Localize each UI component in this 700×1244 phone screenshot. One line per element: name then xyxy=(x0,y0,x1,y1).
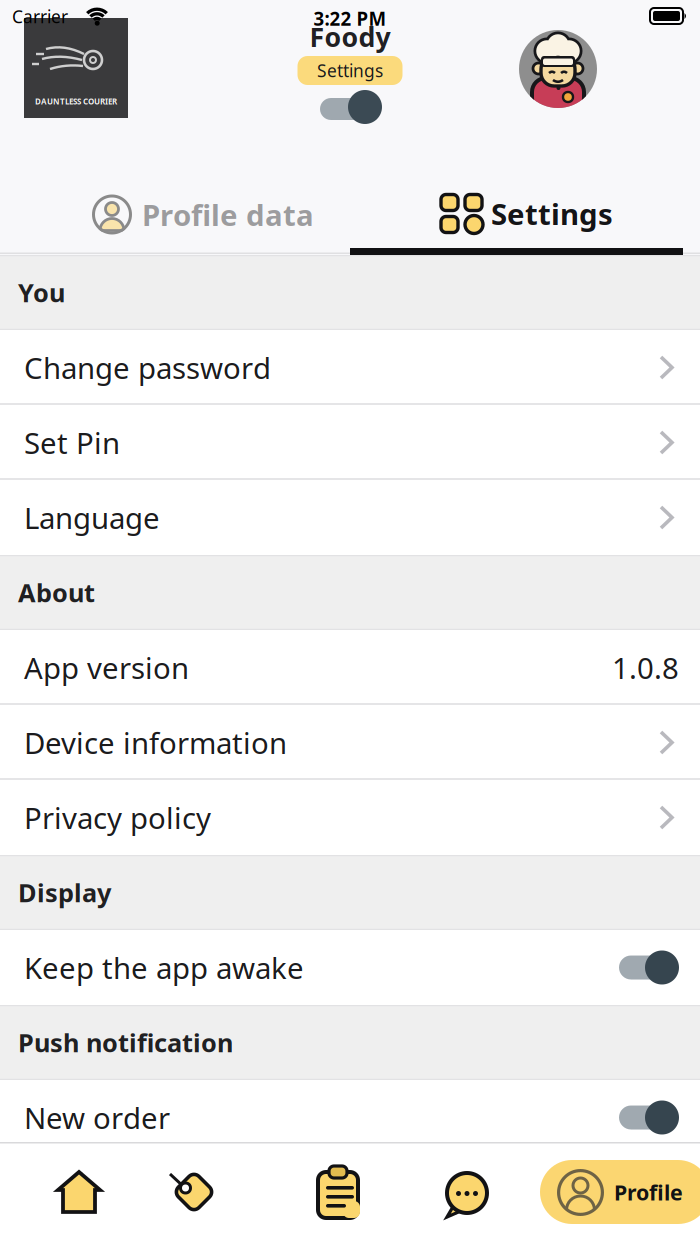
button[interactable]: Chat xyxy=(444,1172,490,1220)
staticText: 3:22 PM xyxy=(313,6,386,31)
staticText: Settings xyxy=(491,194,613,233)
button[interactable]: Home xyxy=(56,1171,102,1213)
staticText: DAUNTLESS COURIER xyxy=(35,96,117,107)
button[interactable]: Settings xyxy=(440,193,613,233)
button[interactable]: Set Pin xyxy=(0,405,700,480)
staticText: Settings xyxy=(317,59,383,82)
button[interactable]: Profile data xyxy=(92,194,314,234)
button[interactable]: Toggle settings xyxy=(320,89,382,129)
button[interactable]: Language xyxy=(0,480,700,555)
staticText: Foody xyxy=(309,19,390,54)
staticText: App version xyxy=(24,648,189,687)
button[interactable]: Privacy policy xyxy=(0,780,700,855)
button[interactable]: Keep the app awake toggle xyxy=(619,949,679,985)
button[interactable]: Change password xyxy=(0,330,700,405)
button[interactable]: New order toggle xyxy=(619,1099,679,1135)
staticText: Keep the app awake xyxy=(24,948,304,987)
staticText: You xyxy=(18,276,65,309)
staticText: About xyxy=(18,576,95,609)
button[interactable]: Orders xyxy=(316,1164,360,1220)
staticText: Display xyxy=(18,876,111,909)
staticText: Profile xyxy=(614,1178,683,1206)
staticText: New order xyxy=(24,1098,170,1137)
staticText: Language xyxy=(24,498,160,537)
staticText: Device information xyxy=(24,723,287,762)
button[interactable]: Device information xyxy=(0,705,700,780)
staticText: Carrier xyxy=(12,5,68,28)
staticText: Set Pin xyxy=(24,423,120,462)
staticText: 1.0.8 xyxy=(612,648,679,687)
staticText: Push notification xyxy=(18,1026,233,1059)
button[interactable]: Profile xyxy=(540,1160,700,1224)
staticText: Change password xyxy=(24,348,271,387)
staticText: Privacy policy xyxy=(24,798,211,837)
button[interactable]: Profile photo xyxy=(519,30,597,108)
staticText: Profile data xyxy=(142,195,314,234)
button[interactable]: Offers xyxy=(166,1167,222,1217)
